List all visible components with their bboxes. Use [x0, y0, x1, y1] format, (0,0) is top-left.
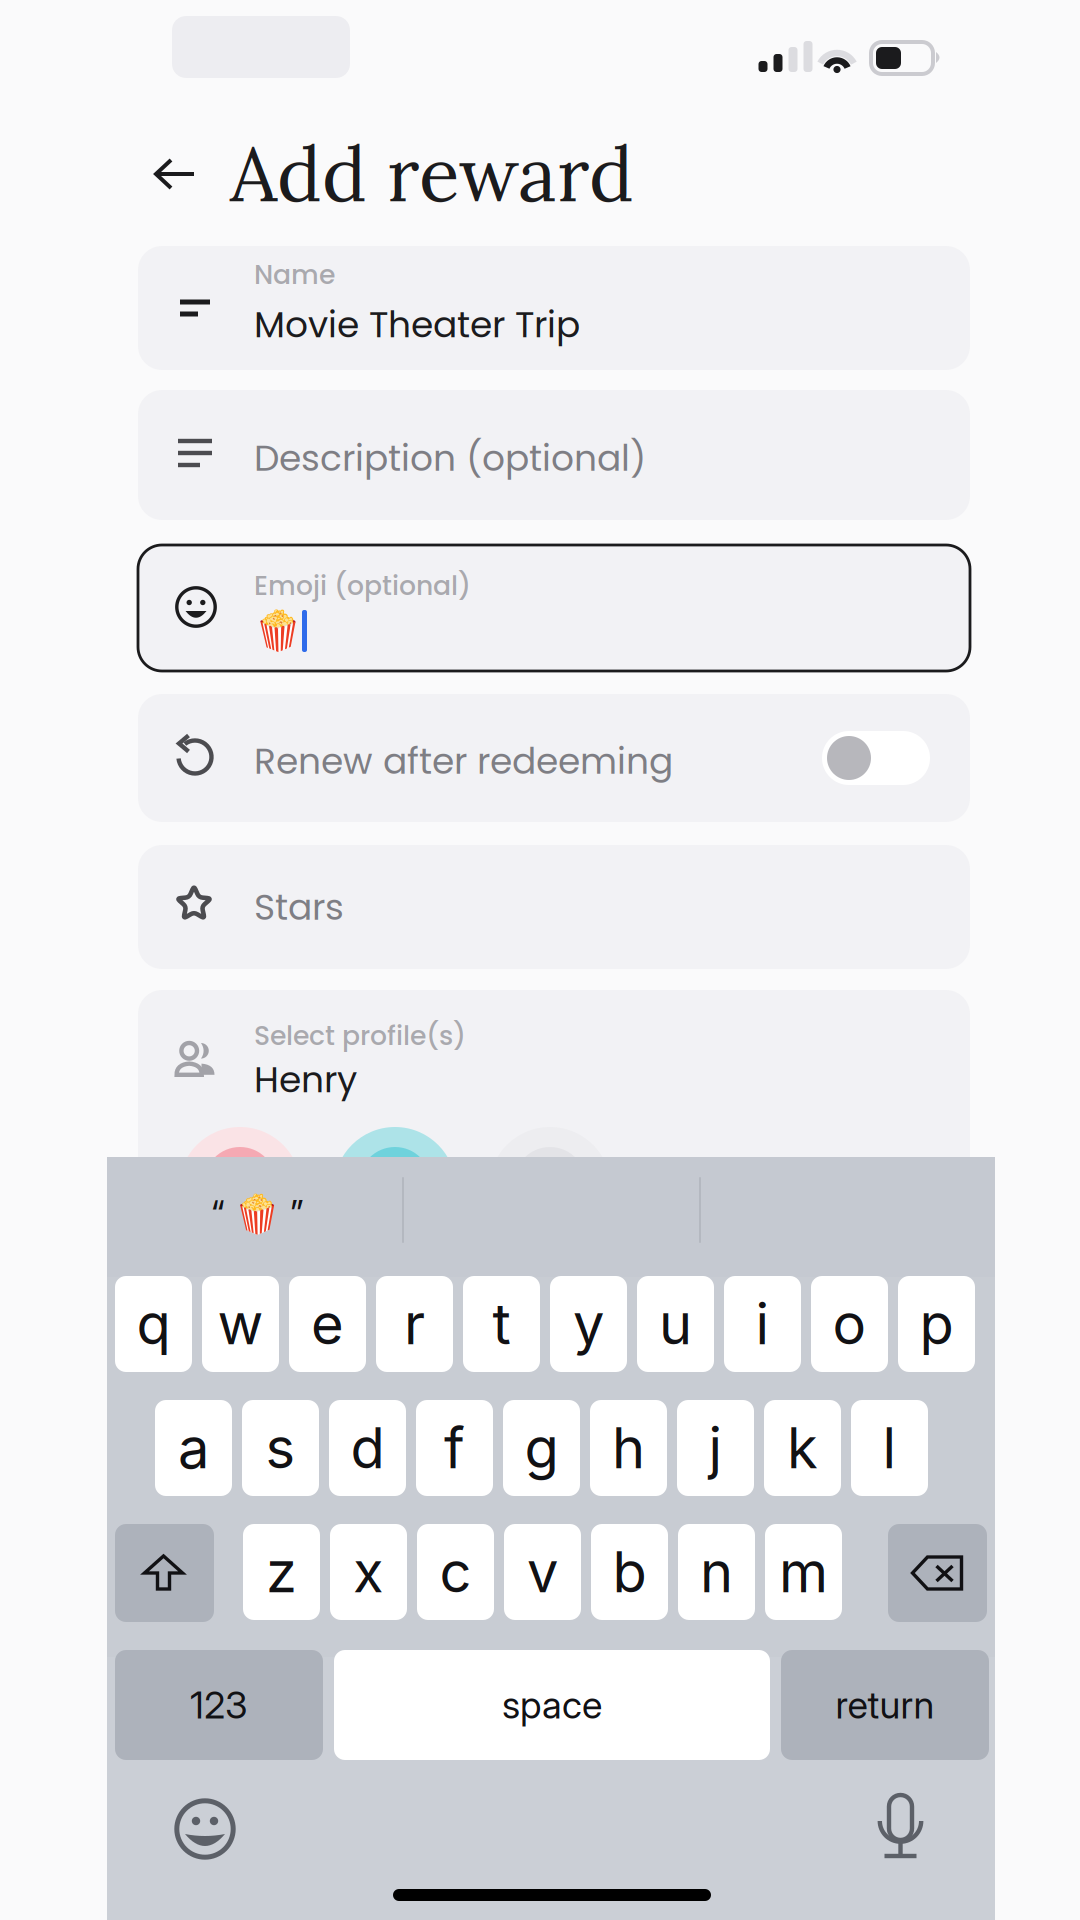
button[interactable]: m — [765, 1524, 842, 1620]
button[interactable]: q — [115, 1276, 192, 1372]
staticText: return — [835, 1682, 934, 1728]
staticText: 🍿 — [254, 608, 302, 654]
staticText: Henry — [254, 1054, 357, 1105]
staticText: s — [265, 1414, 295, 1482]
button[interactable]: Stars — [138, 845, 970, 969]
button[interactable]: k — [764, 1400, 841, 1496]
button[interactable]: s — [242, 1400, 319, 1496]
button[interactable]: b — [591, 1524, 668, 1620]
staticText: Select profile(s) — [254, 1017, 466, 1054]
staticText: q — [136, 1290, 170, 1358]
button[interactable]: y — [550, 1276, 627, 1372]
staticText: Emoji (optional) — [254, 567, 471, 604]
button[interactable]: return — [781, 1650, 989, 1760]
staticText: p — [919, 1290, 953, 1358]
staticText: Name — [254, 256, 335, 293]
staticText: i — [755, 1290, 769, 1358]
staticText: a — [178, 1414, 209, 1482]
button[interactable]: r — [376, 1276, 453, 1372]
staticText: Stars — [254, 882, 344, 932]
staticText: f — [444, 1414, 465, 1482]
staticText: w — [217, 1290, 263, 1358]
button[interactable]: j — [677, 1400, 754, 1496]
button[interactable]: c — [417, 1524, 494, 1620]
staticText: j — [708, 1414, 722, 1482]
button[interactable]: d — [329, 1400, 406, 1496]
button[interactable]: f — [416, 1400, 493, 1496]
staticText: Add reward — [230, 126, 634, 222]
staticText: space — [502, 1682, 602, 1728]
button[interactable]: Description (optional) — [138, 390, 970, 520]
staticText: k — [787, 1414, 818, 1482]
staticText: Renew after redeeming — [254, 736, 673, 786]
staticText: t — [492, 1290, 510, 1358]
button[interactable]: u — [637, 1276, 714, 1372]
button[interactable]: e — [289, 1276, 366, 1372]
staticText: b — [612, 1538, 646, 1606]
staticText: x — [353, 1538, 384, 1606]
button[interactable]: Delete — [888, 1524, 987, 1622]
staticText: u — [659, 1290, 692, 1358]
staticText: r — [404, 1290, 425, 1358]
button[interactable]: t — [463, 1276, 540, 1372]
button[interactable]: z — [243, 1524, 320, 1620]
staticText: z — [266, 1538, 297, 1606]
staticText: e — [311, 1290, 344, 1358]
button[interactable]: v — [504, 1524, 581, 1620]
staticText: l — [882, 1414, 896, 1482]
staticText: o — [832, 1290, 866, 1358]
staticText: “ 🍿 ” — [211, 1191, 304, 1236]
button[interactable]: w — [202, 1276, 279, 1372]
staticText: Movie Theater Trip — [254, 299, 580, 350]
staticText: m — [779, 1538, 828, 1606]
button[interactable]: p — [898, 1276, 975, 1372]
button[interactable]: Name — [138, 246, 970, 370]
button[interactable]: l — [851, 1400, 928, 1496]
button[interactable]: Renew after redeeming — [138, 694, 970, 822]
button[interactable]: Select profile(s) — [138, 990, 970, 1270]
button[interactable]: space — [334, 1650, 770, 1760]
button[interactable]: Shift — [115, 1524, 214, 1622]
staticText: n — [700, 1538, 733, 1606]
staticText: v — [527, 1538, 558, 1606]
staticText: y — [573, 1290, 604, 1358]
button[interactable]: a — [155, 1400, 232, 1496]
button[interactable]: h — [590, 1400, 667, 1496]
staticText: c — [439, 1538, 471, 1606]
staticText: h — [612, 1414, 645, 1482]
button[interactable]: Add reward — [152, 124, 872, 224]
staticText: g — [524, 1414, 558, 1482]
button[interactable]: i — [724, 1276, 801, 1372]
button[interactable]: Dictation — [878, 1794, 923, 1860]
staticText: d — [350, 1414, 384, 1482]
button[interactable]: g — [503, 1400, 580, 1496]
button[interactable]: o — [811, 1276, 888, 1372]
button[interactable]: n — [678, 1524, 755, 1620]
staticText: Description (optional) — [254, 433, 646, 483]
button[interactable]: Emoji keyboard — [174, 1798, 236, 1860]
staticText: 123 — [190, 1682, 248, 1728]
button[interactable]: Emoji (optional) — [138, 545, 970, 671]
button[interactable]: x — [330, 1524, 407, 1620]
button[interactable]: 123 — [115, 1650, 323, 1760]
